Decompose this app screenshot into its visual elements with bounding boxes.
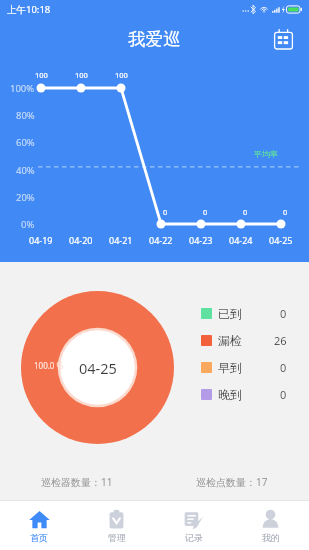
staticText: 04-21 — [109, 234, 133, 246]
staticText: 100% — [10, 82, 35, 95]
staticText: 平均率 — [254, 149, 278, 159]
button[interactable]: 已到 — [201, 300, 293, 327]
staticText: 早到 — [218, 360, 242, 375]
staticText: 0 — [163, 207, 168, 217]
button[interactable]: 我的 — [232, 501, 309, 550]
staticText: 首页 — [30, 532, 48, 543]
button[interactable]: 管理 — [78, 501, 155, 550]
staticText: 0 — [243, 207, 248, 217]
staticText: 40% — [16, 164, 35, 177]
staticText: 04-22 — [149, 234, 173, 246]
staticText: 巡检点数量：17 — [196, 475, 268, 489]
button[interactable]: 晚到 — [201, 381, 293, 408]
staticText: 26 — [274, 333, 287, 348]
staticText: 04-23 — [189, 234, 213, 246]
button[interactable]: 首页 — [0, 501, 78, 550]
staticText: 巡检器数量：11 — [41, 475, 113, 489]
staticText: 管理 — [108, 532, 126, 543]
button[interactable]: Calendar — [268, 24, 298, 54]
staticText: 0 — [280, 387, 287, 402]
staticText: 上午10:18 — [7, 3, 51, 16]
staticText: 我的 — [262, 532, 280, 543]
staticText: 04-25 — [269, 234, 293, 246]
staticText: 100 — [75, 70, 88, 80]
staticText: 04-20 — [69, 234, 93, 246]
staticText: 100.0 % — [34, 360, 64, 371]
staticText: 04-25 — [79, 358, 117, 378]
staticText: 漏检 — [218, 333, 242, 348]
staticText: 我爱巡 — [128, 28, 181, 50]
staticText: 晚到 — [218, 387, 242, 402]
button[interactable]: 早到 — [201, 354, 293, 381]
staticText: 04-24 — [229, 234, 253, 246]
staticText: 0 — [280, 360, 287, 375]
staticText: 已到 — [218, 306, 242, 321]
staticText: 100 — [35, 70, 48, 80]
staticText: 100 — [115, 70, 128, 80]
staticText: 0 — [203, 207, 208, 217]
staticText: 0 — [283, 207, 288, 217]
button[interactable]: 漏检 — [201, 327, 293, 354]
staticText: 20% — [16, 191, 35, 204]
staticText: 60% — [16, 136, 35, 149]
staticText: 0 — [280, 306, 287, 321]
button[interactable]: 记录 — [155, 501, 232, 550]
staticText: 04-19 — [29, 234, 53, 246]
staticText: 记录 — [185, 532, 203, 543]
staticText: 0% — [21, 218, 35, 231]
staticText: 80% — [16, 109, 35, 122]
